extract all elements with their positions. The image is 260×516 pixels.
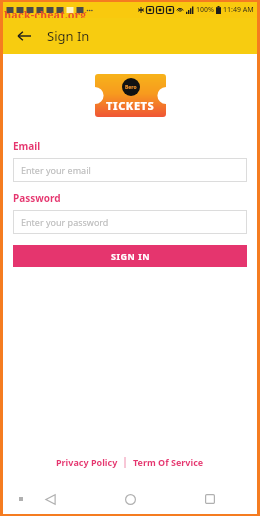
staticText: 100% <box>196 5 214 15</box>
staticText: Sign In <box>47 27 90 45</box>
staticText: Password <box>13 191 61 205</box>
staticText: 11:49 AM <box>223 5 254 15</box>
button[interactable]: Back <box>13 25 35 47</box>
staticText: TICKETS <box>106 98 155 113</box>
button[interactable]: Enter your password <box>13 210 247 234</box>
staticText: hack-cheat.org <box>4 7 87 22</box>
staticText: Email <box>13 139 41 153</box>
staticText: Privacy Policy <box>56 456 118 468</box>
button[interactable]: SIGN IN <box>13 245 247 267</box>
staticText: Term Of Service <box>133 456 204 468</box>
button[interactable]: Privacy Policy <box>53 454 121 470</box>
button[interactable]: Enter your email <box>13 158 247 182</box>
staticText: Bero <box>125 84 137 91</box>
button[interactable]: Home <box>119 488 141 510</box>
staticText: SIGN IN <box>111 250 150 262</box>
button[interactable]: Term Of Service <box>130 454 207 470</box>
staticText: Enter your email <box>21 164 91 176</box>
button[interactable]: Recent apps <box>199 488 221 510</box>
button[interactable]: Back <box>39 488 61 510</box>
staticText: Enter your password <box>21 216 109 228</box>
